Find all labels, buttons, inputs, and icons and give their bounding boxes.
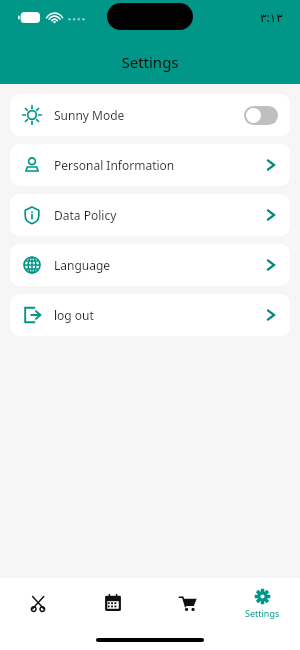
staticText: Settings [245,607,280,619]
button[interactable]: Calendar [75,578,150,628]
staticText: Data Policy [54,207,117,223]
button[interactable]: log out [10,294,290,336]
staticText: ٣:١٣ [260,9,283,25]
button[interactable]: Cart [150,578,225,628]
button[interactable]: Language [10,244,290,286]
staticText: log out [54,307,94,323]
button[interactable]: Sunny Mode [10,94,290,136]
staticText: Personal Information [54,157,175,173]
button[interactable]: Personal Information [10,144,290,186]
button[interactable]: Data Policy [10,194,290,236]
staticText: Sunny Mode [54,107,125,123]
button[interactable]: Sunny Mode toggle [244,106,278,125]
button[interactable]: Settings [225,578,300,628]
staticText: Settings [121,52,179,72]
staticText: Language [54,257,111,273]
button[interactable]: Cut [0,578,75,628]
